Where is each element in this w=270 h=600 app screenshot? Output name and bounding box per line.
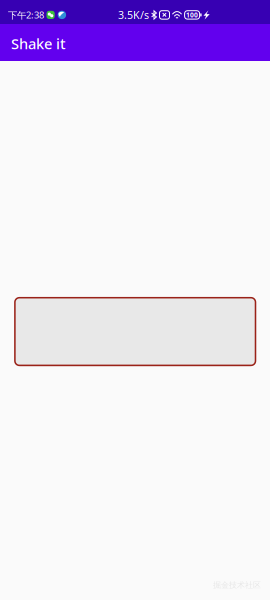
staticText: 下午2:38 — [8, 9, 44, 21]
staticText: 掘金技术社区 — [213, 580, 261, 590]
staticText: Shake it — [11, 34, 66, 53]
staticText: 3.5K/s — [118, 8, 149, 22]
staticText: 100 — [186, 10, 198, 19]
button[interactable]: Shake panel — [15, 298, 255, 365]
